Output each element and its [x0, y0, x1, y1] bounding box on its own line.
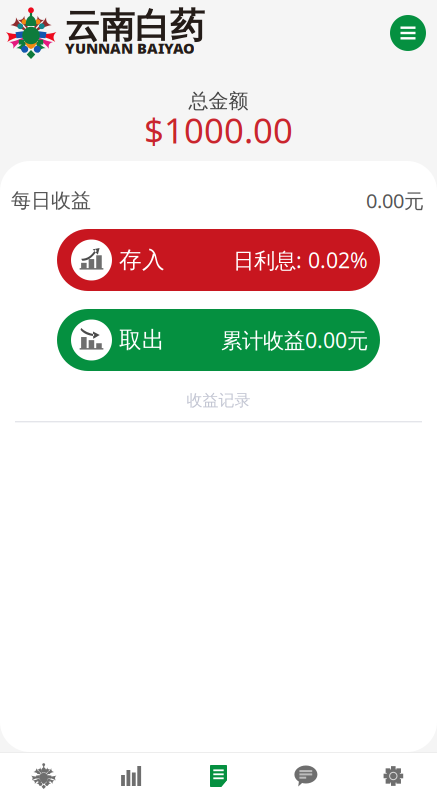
button[interactable]: Menu [390, 15, 426, 51]
staticText: 总金额 [188, 89, 248, 113]
button[interactable]: Records [175, 753, 262, 799]
button[interactable]: Home [0, 753, 87, 799]
staticText: 存入 [119, 246, 165, 274]
button[interactable]: Settings [350, 753, 437, 799]
button[interactable]: Statistics [87, 753, 175, 799]
button[interactable]: 收益记录 [0, 371, 437, 421]
staticText: 0.00元 [366, 187, 424, 214]
staticText: 日利息: 0.02% [233, 246, 368, 274]
staticText: YUNNAN BAIYAO [65, 38, 195, 58]
button[interactable]: Messages [262, 753, 350, 799]
staticText: 取出 [119, 326, 165, 354]
button[interactable]: 存入 [57, 229, 380, 291]
staticText: 收益记录 [186, 391, 250, 410]
staticText: 每日收益 [11, 188, 91, 213]
staticText: 云南白药 [65, 5, 205, 47]
staticText: $1000.00 [144, 107, 293, 153]
button[interactable]: 取出 [57, 309, 380, 371]
staticText: 累计收益0.00元 [221, 326, 368, 354]
